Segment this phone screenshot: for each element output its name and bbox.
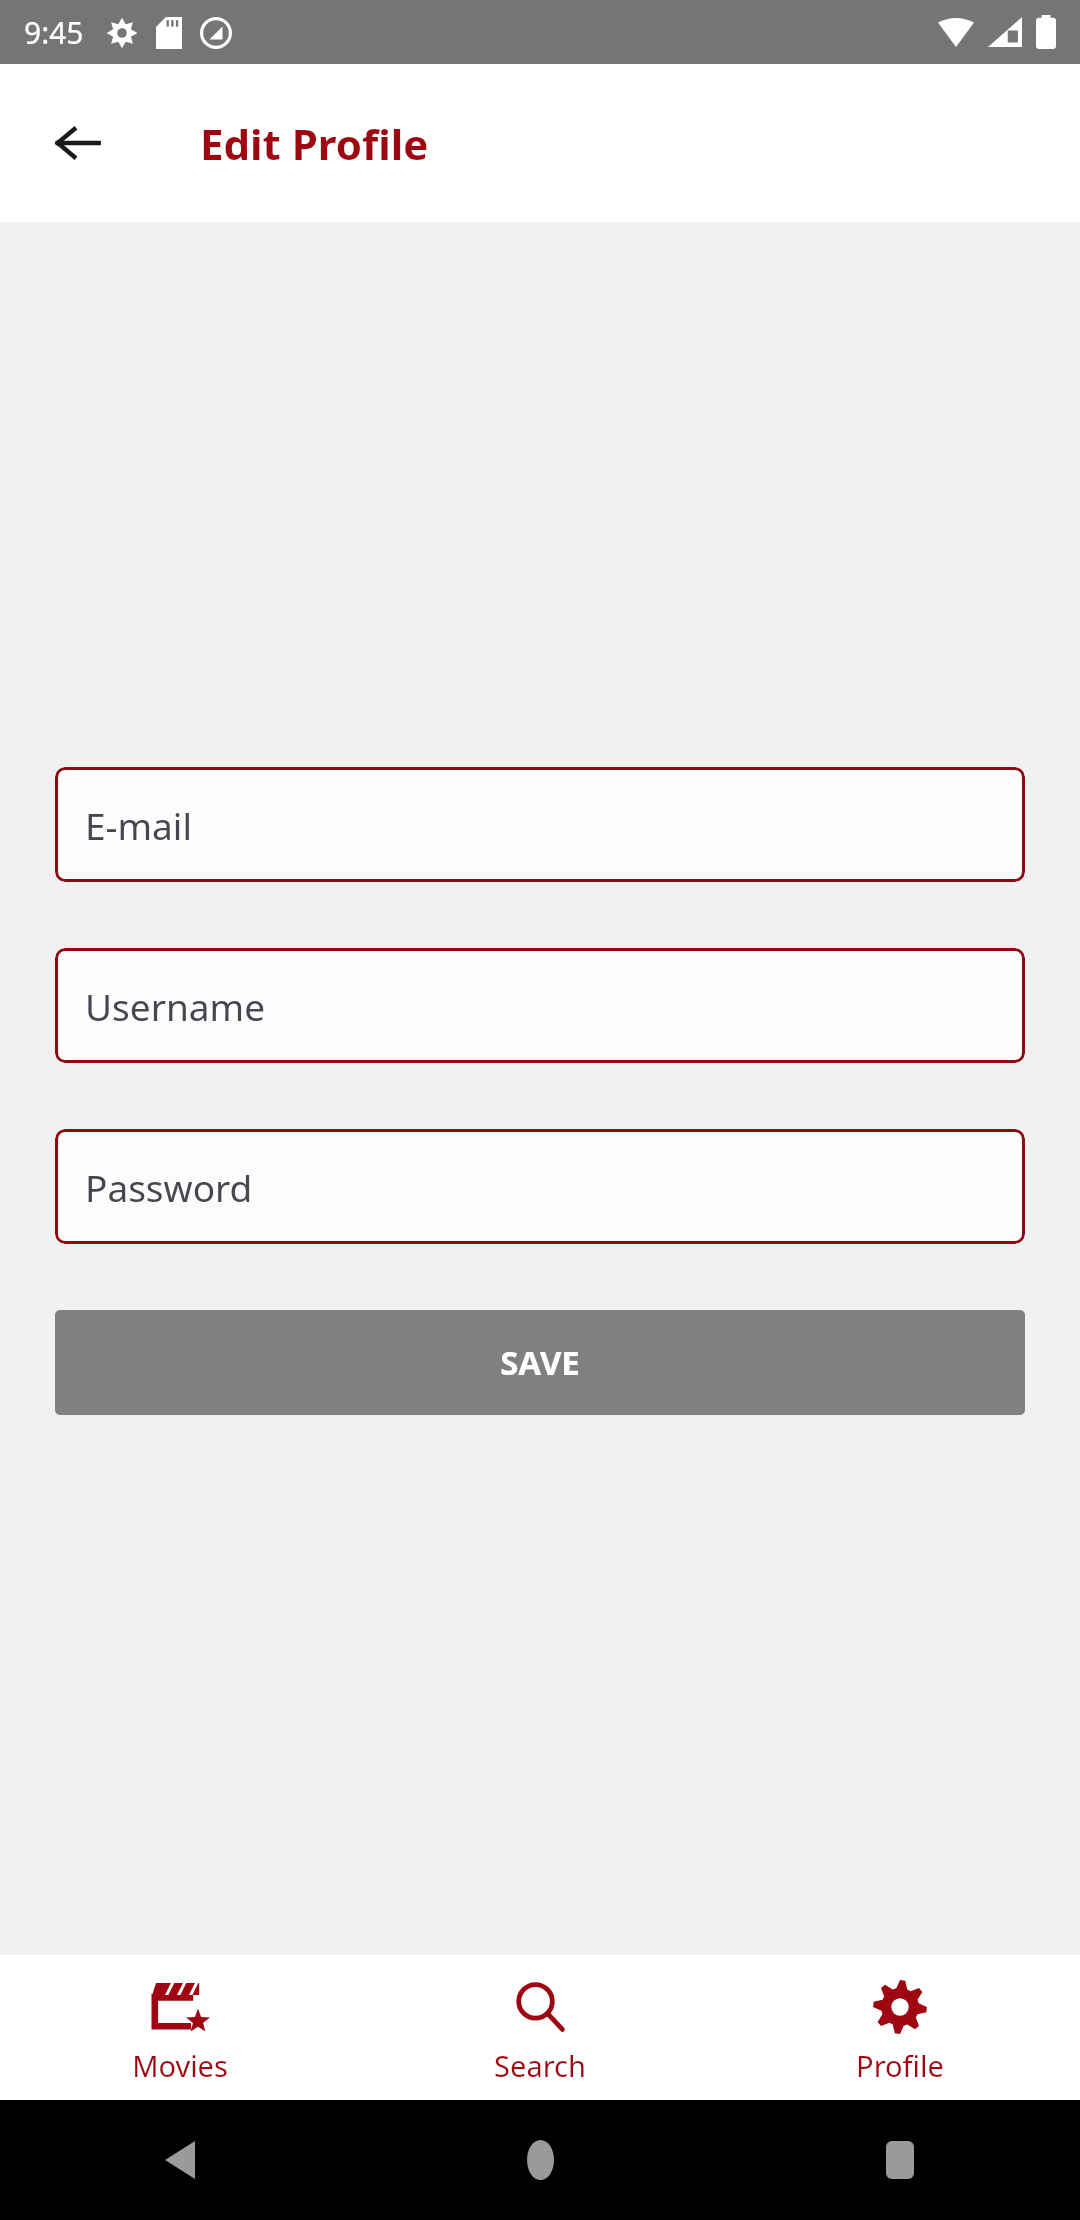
button[interactable]: Movies — [0, 1955, 360, 2100]
button[interactable]: SAVE — [55, 1310, 1025, 1415]
button[interactable]: Recent apps — [720, 2100, 1080, 2220]
staticText: SAVE — [500, 1340, 580, 1385]
staticText: Search — [494, 2046, 586, 2085]
button[interactable]: Username — [55, 948, 1025, 1063]
staticText: E-mail — [85, 800, 192, 850]
staticText: 9:45 — [24, 12, 84, 53]
staticText: Edit Profile — [200, 115, 429, 172]
button[interactable]: Password — [55, 1129, 1025, 1244]
button[interactable]: Back — [30, 95, 126, 191]
staticText: Profile — [856, 2046, 944, 2085]
button[interactable]: Home — [360, 2100, 720, 2220]
button[interactable]: Search — [360, 1955, 720, 2100]
button[interactable]: E-mail — [55, 767, 1025, 882]
button[interactable]: Back — [0, 2100, 360, 2220]
staticText: Movies — [132, 2046, 228, 2085]
staticText: Username — [85, 981, 266, 1031]
button[interactable]: Profile — [720, 1955, 1080, 2100]
staticText: Password — [85, 1162, 253, 1212]
